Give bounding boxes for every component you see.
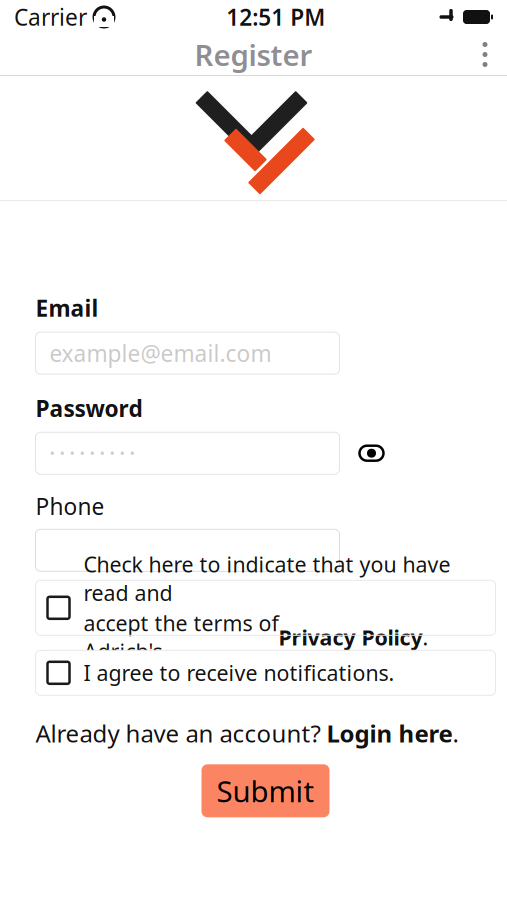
staticText: Submit [216,771,314,810]
staticText: Privacy Policy [278,623,422,651]
button[interactable]: Check here to indicate that you have rea… [35,580,495,635]
staticText: I agree to receive notifications. [83,659,394,687]
staticText: Carrier [14,2,87,32]
staticText: Phone [35,491,104,521]
button[interactable]: I agree to receive notifications. [35,650,495,695]
button[interactable]: Submit [201,764,329,817]
staticText: . [422,623,428,651]
staticText: • • • • • • • • • [49,443,135,463]
button[interactable]: Already have an account? [35,720,495,746]
staticText: Email [35,293,98,323]
staticText: . [452,717,458,749]
staticText: Check here to indicate that you have rea… [83,550,450,607]
staticText: accept the terms of Adrich's [83,609,278,665]
staticText: Login here [326,717,452,749]
button[interactable]: More options [463,34,507,75]
staticText: example@email.com [49,338,271,368]
staticText: Already have an account? [35,717,326,749]
staticText: Register [194,35,312,74]
button[interactable]: Show password [347,432,395,474]
staticText: 12:51 PM [226,2,325,32]
staticText: Password [35,393,142,423]
